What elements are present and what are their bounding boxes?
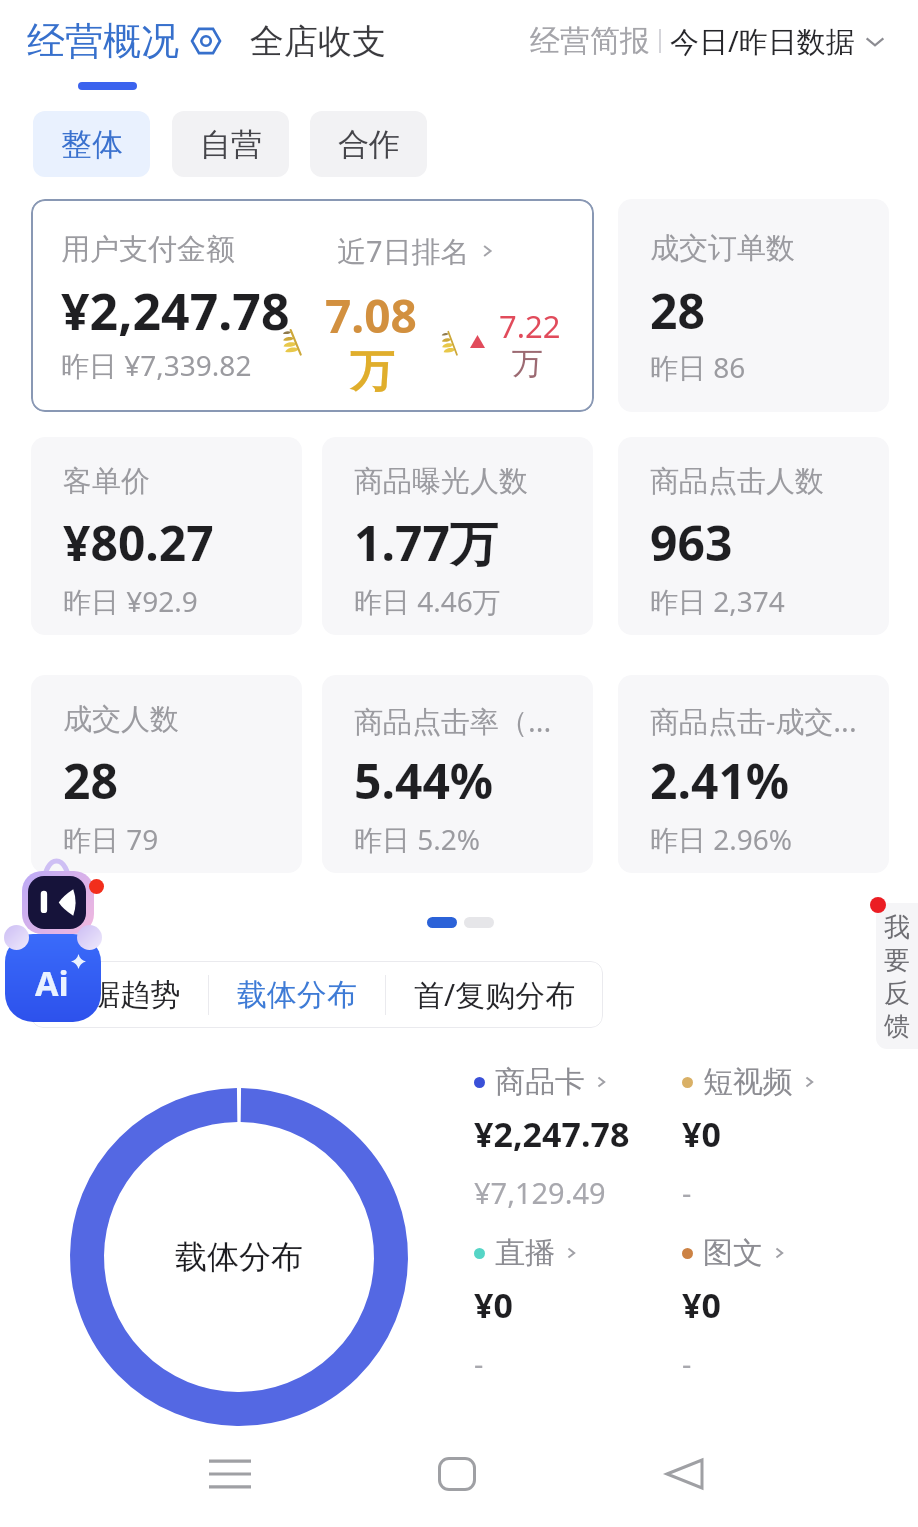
button[interactable]: 图文: [682, 1234, 787, 1272]
staticText: ¥0: [682, 1111, 721, 1157]
staticText: 用户支付金额: [61, 231, 235, 268]
staticText: 28: [650, 278, 705, 343]
staticText: 昨日 2,374: [650, 582, 785, 620]
staticText: 首/复购分布: [414, 974, 576, 1015]
button[interactable]: 商品卡: [474, 1063, 609, 1101]
staticText: 商品点击-成交...: [650, 701, 857, 741]
button[interactable]: 数据趋势: [31, 961, 208, 1028]
button[interactable]: 自营: [172, 111, 289, 177]
staticText: 商品点击率（...: [354, 701, 552, 741]
button[interactable]: Home: [381, 1441, 533, 1507]
staticText: 28: [63, 748, 118, 813]
staticText: 经营简报: [530, 22, 650, 60]
staticText: 载体分布: [237, 976, 357, 1014]
staticText: ¥0: [474, 1282, 513, 1328]
staticText: 7.22: [499, 305, 561, 347]
button[interactable]: AI assistant: [0, 855, 115, 1030]
button[interactable]: Back: [608, 1441, 760, 1507]
staticText: 经营概况: [27, 17, 179, 65]
button[interactable]: 成交人数: [31, 675, 302, 873]
button[interactable]: 短视频: [682, 1063, 817, 1101]
button[interactable]: 商品点击-成交...: [618, 675, 889, 873]
staticText: ¥0: [682, 1282, 721, 1328]
staticText: Ai: [35, 960, 69, 1006]
staticText: 短视频: [703, 1063, 793, 1101]
staticText: 7.08: [325, 284, 417, 347]
staticText: 昨日 5.2%: [354, 820, 481, 858]
staticText: 万: [350, 344, 394, 399]
button[interactable]: 客单价: [31, 437, 302, 635]
staticText: 直播: [495, 1234, 555, 1272]
staticText: 商品点击人数: [650, 463, 824, 500]
staticText: 昨日 4.46万: [354, 582, 501, 620]
button[interactable]: Recent apps: [154, 1441, 306, 1507]
button[interactable]: 合作: [310, 111, 427, 177]
staticText: 万: [512, 344, 543, 383]
staticText: -: [474, 1344, 484, 1383]
button[interactable]: 商品点击率（...: [322, 675, 593, 873]
staticText: 2.41%: [650, 748, 790, 813]
staticText: 963: [650, 510, 733, 575]
staticText: -: [682, 1344, 692, 1383]
staticText: -: [682, 1173, 692, 1212]
staticText: 1.77万: [354, 510, 498, 576]
button[interactable]: 我 要 反 馈: [876, 903, 918, 1049]
staticText: 载体分布: [175, 1237, 303, 1277]
staticText: 全店收支: [250, 20, 386, 63]
staticText: 成交人数: [63, 701, 179, 738]
staticText: 商品卡: [495, 1063, 585, 1101]
button[interactable]: 整体: [33, 111, 150, 177]
button[interactable]: 首/复购分布: [386, 961, 603, 1028]
staticText: 昨日 79: [63, 820, 159, 858]
staticText: 自营: [200, 125, 262, 164]
staticText: 昨日 86: [650, 348, 746, 386]
staticText: 我 要 反 馈: [884, 911, 910, 1042]
staticText: 5.44%: [354, 748, 494, 813]
staticText: 近7日排名: [337, 231, 470, 271]
staticText: 客单价: [63, 463, 150, 500]
staticText: 昨日 ¥92.9: [63, 582, 198, 620]
button[interactable]: 用户支付金额: [31, 199, 594, 412]
staticText: 昨日 2.96%: [650, 820, 793, 858]
staticText: 整体: [61, 125, 123, 164]
staticText: ¥2,247.78: [474, 1111, 630, 1157]
staticText: 成交订单数: [650, 230, 795, 267]
button[interactable]: 成交订单数: [618, 199, 889, 412]
button[interactable]: 商品曝光人数: [322, 437, 593, 635]
button[interactable]: 直播: [474, 1234, 579, 1272]
staticText: ¥7,129.49: [474, 1173, 606, 1212]
staticText: 数据趋势: [60, 976, 180, 1014]
staticText: ¥80.27: [63, 510, 214, 575]
staticText: 今日/昨日数据: [670, 21, 855, 61]
button[interactable]: 商品点击人数: [618, 437, 889, 635]
staticText: 商品曝光人数: [354, 463, 528, 500]
staticText: 图文: [703, 1234, 763, 1272]
staticText: 合作: [338, 125, 400, 164]
staticText: ¥2,247.78: [61, 277, 290, 345]
staticText: 昨日 ¥7,339.82: [61, 346, 252, 384]
button[interactable]: 载体分布: [209, 961, 385, 1028]
